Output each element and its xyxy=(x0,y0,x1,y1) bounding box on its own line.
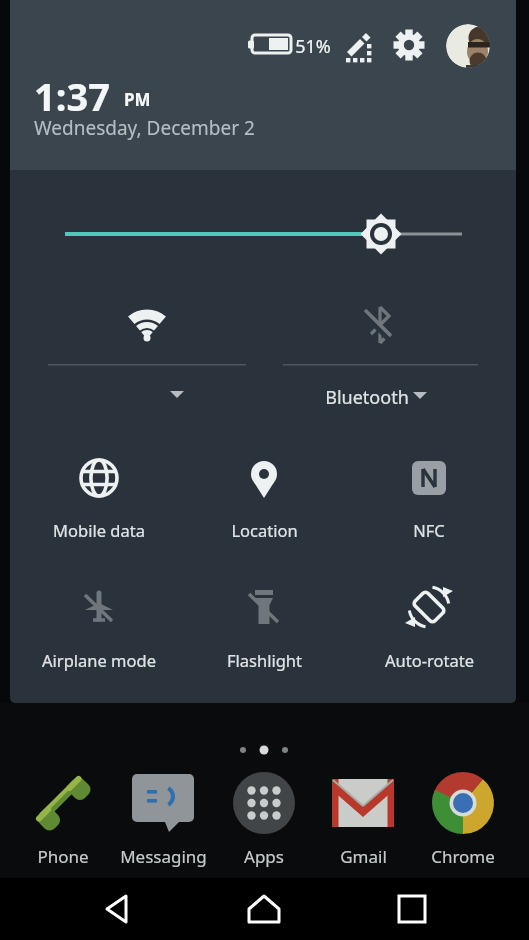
staticText: NFC xyxy=(413,519,445,541)
button[interactable] xyxy=(382,878,442,940)
button[interactable] xyxy=(392,28,426,62)
staticText: Gmail xyxy=(340,845,387,868)
button[interactable] xyxy=(224,770,304,870)
staticText: Bluetooth xyxy=(325,385,409,410)
staticText: Mobile data xyxy=(53,519,145,541)
button[interactable] xyxy=(123,770,203,870)
button[interactable] xyxy=(89,878,149,940)
staticText: Apps xyxy=(244,845,284,868)
button[interactable] xyxy=(359,580,499,680)
button[interactable] xyxy=(423,770,503,870)
staticText: PM xyxy=(124,88,151,111)
staticText: Chrome xyxy=(431,845,495,868)
staticText: Airplane mode xyxy=(42,649,156,671)
staticText: 51% xyxy=(295,34,331,59)
staticText: Auto-rotate xyxy=(385,649,474,671)
button[interactable] xyxy=(283,295,479,415)
button[interactable] xyxy=(194,580,334,680)
button[interactable] xyxy=(359,450,499,550)
staticText: Messaging xyxy=(120,845,207,868)
staticText: 1:37 xyxy=(34,70,110,122)
button[interactable] xyxy=(194,450,334,550)
staticText: Wednesday, December 2 xyxy=(34,115,255,141)
button[interactable] xyxy=(55,215,475,255)
button[interactable] xyxy=(29,580,169,680)
staticText: Phone xyxy=(37,845,89,868)
button[interactable] xyxy=(23,770,103,870)
staticText: Flashlight xyxy=(227,649,302,671)
button[interactable] xyxy=(341,27,377,63)
button[interactable] xyxy=(323,770,403,870)
staticText: Location xyxy=(231,519,298,541)
button[interactable] xyxy=(234,878,294,940)
button[interactable] xyxy=(446,24,490,68)
button[interactable] xyxy=(47,295,247,415)
button[interactable] xyxy=(29,450,169,550)
